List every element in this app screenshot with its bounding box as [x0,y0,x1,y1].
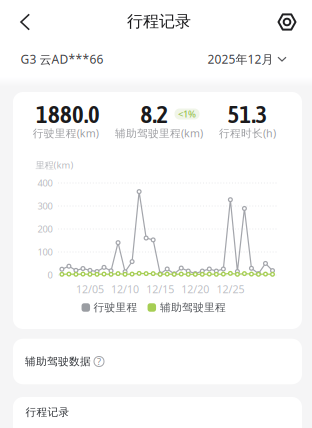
staticText: 辅助驾驶数据 [25,355,91,368]
button[interactable]: 2025年12月 [207,51,286,67]
button[interactable]: 辅助驾驶数据 [13,339,302,384]
staticText: 12/05 [76,282,104,296]
staticText: 行程时长(h) [219,126,276,140]
staticText: 12/15 [146,282,174,296]
staticText: ? [97,355,101,368]
staticText: 里程(km) [35,159,73,171]
staticText: 12/25 [216,282,244,296]
staticText: G3 云AD***66 [20,51,103,67]
staticText: 行程记录 [127,12,191,31]
staticText: 300 [37,200,52,212]
staticText: 12/10 [111,282,139,296]
staticText: 2025年12月 [207,51,273,67]
button[interactable]: G3 云AD***66 [20,51,103,67]
staticText: 51.3 [228,100,268,128]
staticText: 0 [47,269,52,281]
staticText: 辅助驾驶里程 [160,301,226,314]
staticText: 200 [37,223,52,235]
staticText: <1% [178,108,196,120]
button[interactable]: Settings [274,9,300,35]
staticText: 1880.0 [36,100,100,128]
staticText: 行驶里程 [94,301,138,314]
staticText: 辅助驾驶里程(km) [115,126,203,140]
staticText: 12/20 [181,282,209,296]
staticText: 400 [37,177,52,189]
button[interactable]: Back [10,7,40,37]
staticText: 8.2 [140,100,168,128]
staticText: 100 [37,246,52,258]
button[interactable]: 行程记录 [13,397,302,428]
staticText: 行驶里程(km) [33,126,99,140]
staticText: 行程记录 [25,406,69,419]
